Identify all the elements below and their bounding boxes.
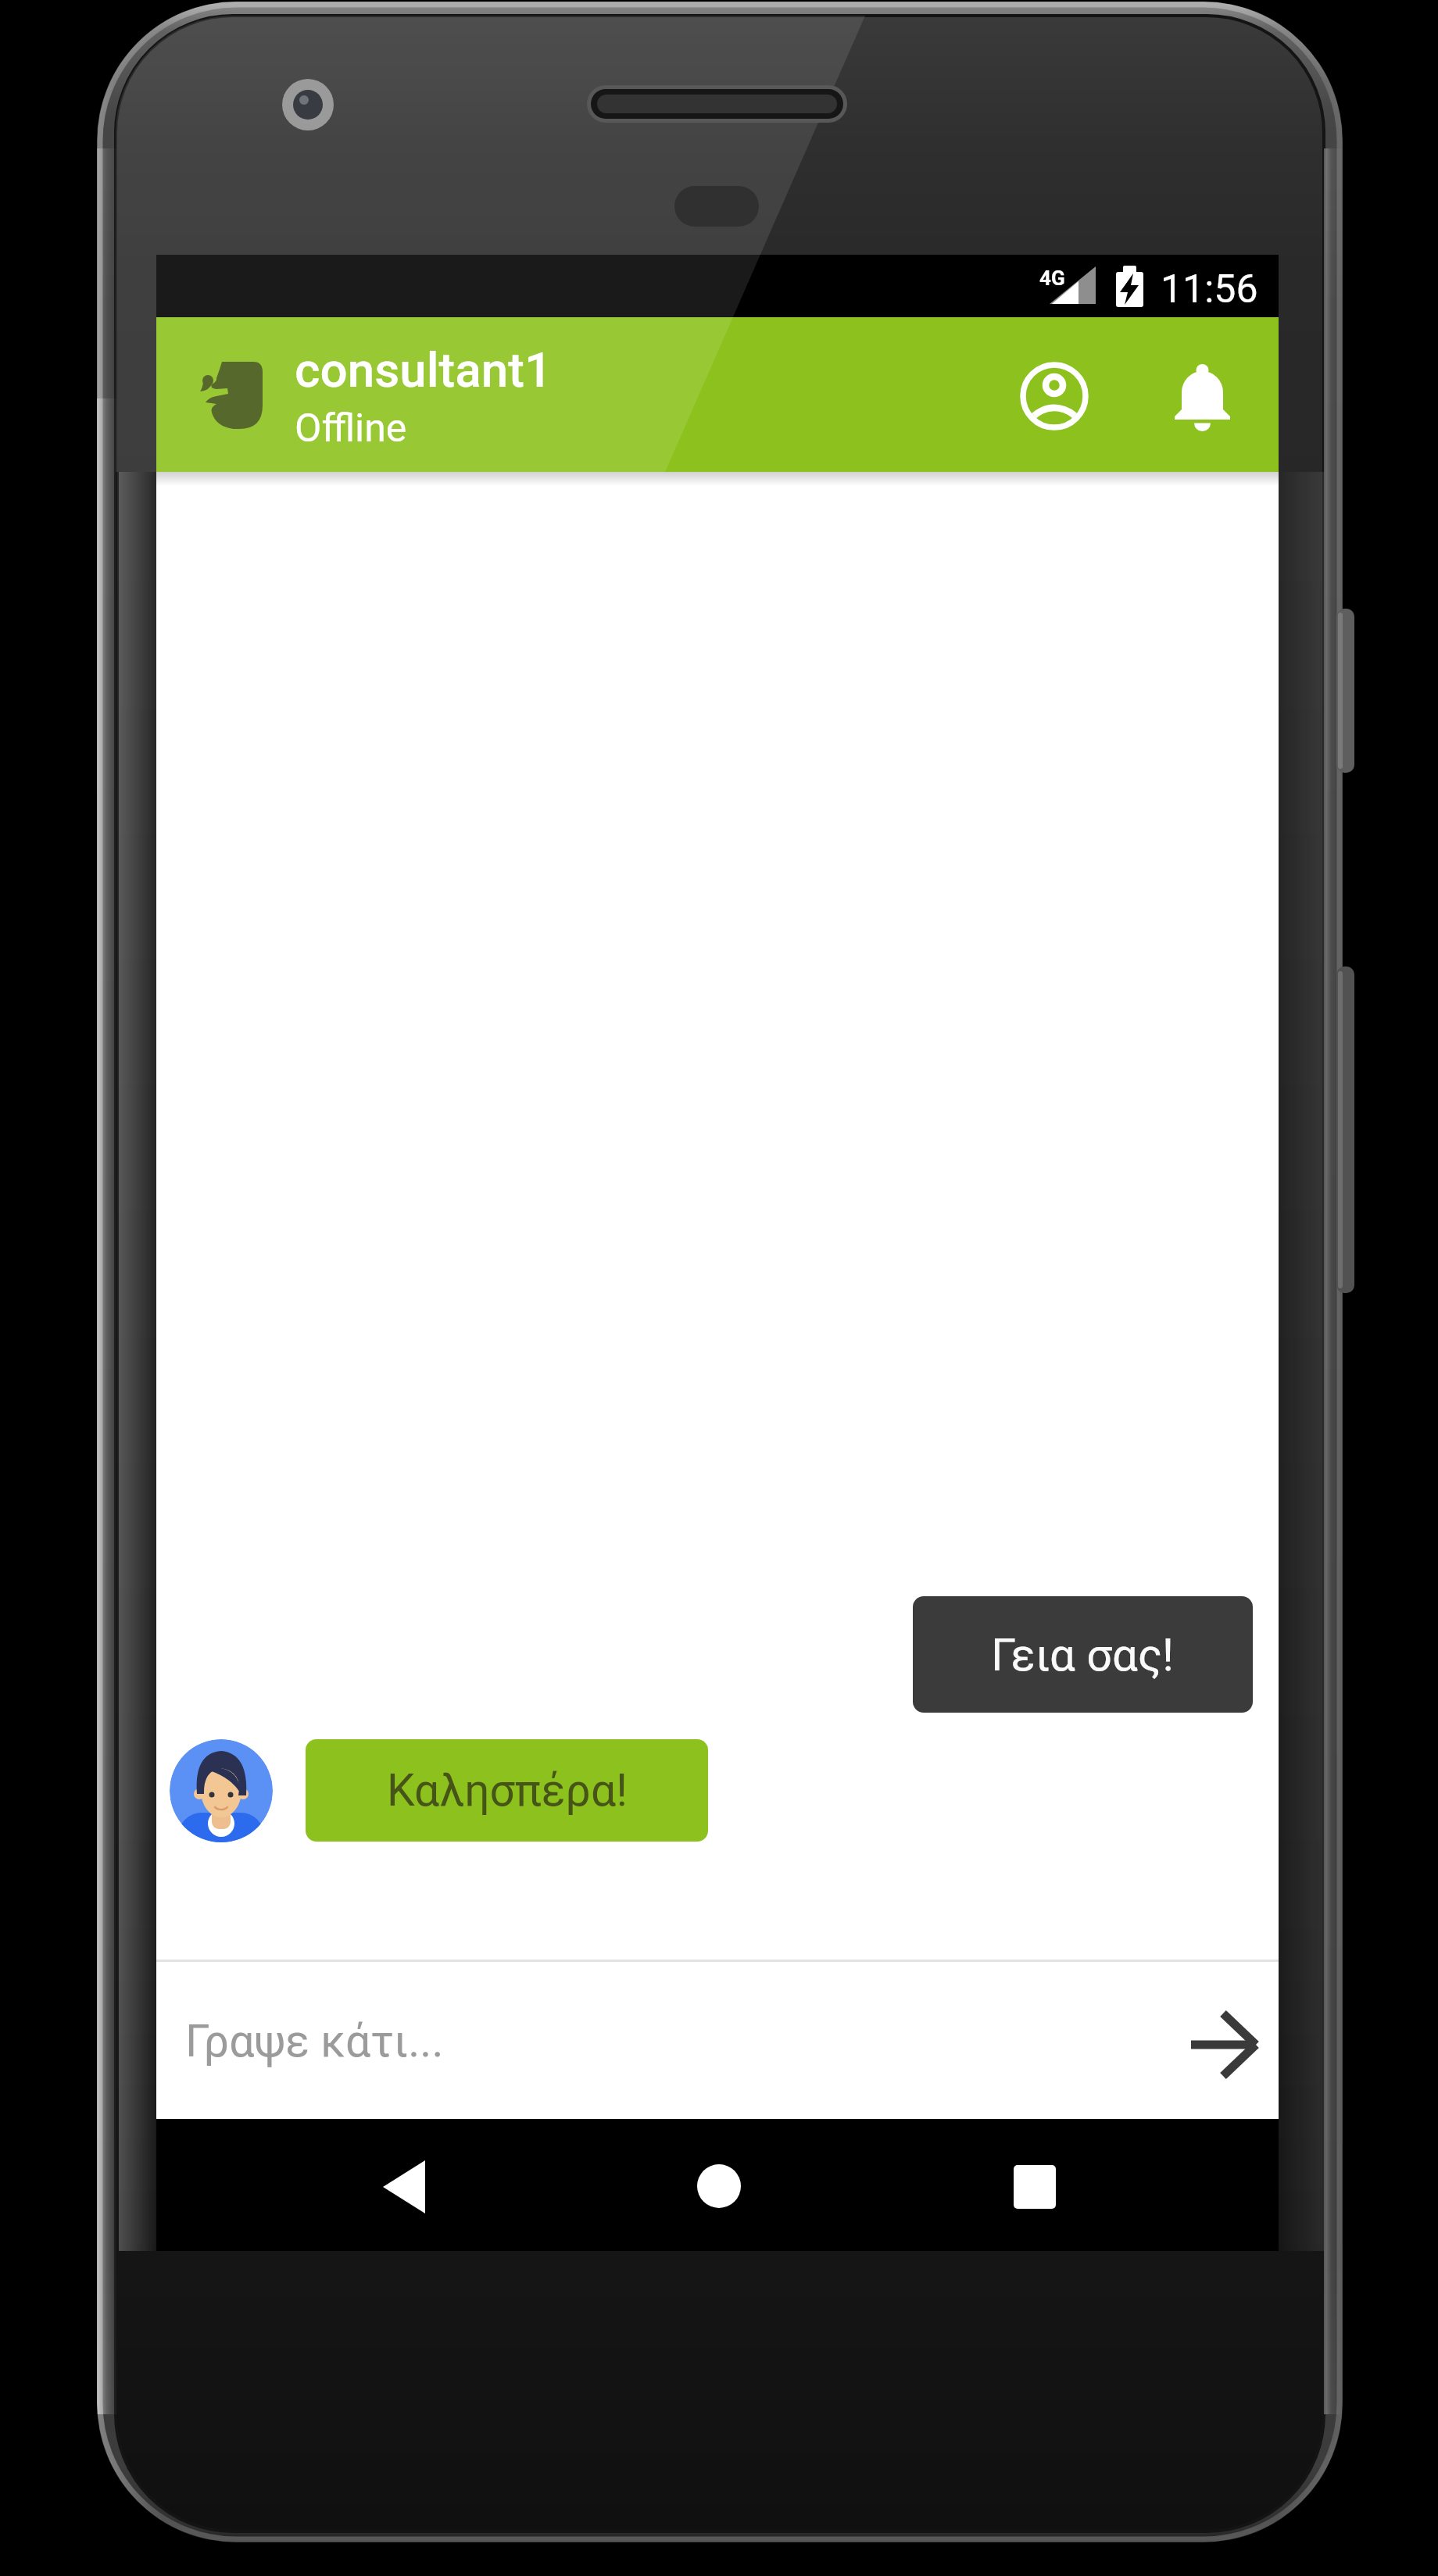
staticText: Γραψε κάτι... (185, 2015, 444, 2067)
staticText: Γεια σας! (991, 1628, 1175, 1681)
button[interactable] (336, 2133, 477, 2242)
staticText: Καλησπέρα! (387, 1764, 628, 1817)
staticText: 11:56 (1161, 266, 1258, 309)
button[interactable] (649, 2133, 789, 2242)
button[interactable] (170, 1739, 273, 1842)
button[interactable] (967, 2133, 1107, 2242)
button[interactable]: Καλησπέρα! (306, 1739, 708, 1842)
button[interactable] (1164, 358, 1243, 436)
staticText: 4G (1039, 266, 1065, 290)
button[interactable] (1172, 1995, 1274, 2096)
staticText: consultant1 (295, 341, 553, 398)
button[interactable] (1016, 358, 1094, 436)
button[interactable]: Γραψε κάτι... (185, 2006, 889, 2075)
button[interactable]: Γεια σας! (913, 1596, 1253, 1713)
staticText: Offline (295, 406, 407, 452)
